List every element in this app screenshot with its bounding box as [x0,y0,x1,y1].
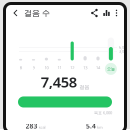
staticText: 6,000 [119,44,128,50]
staticText: 5.4 [86,122,96,130]
staticText: 283 [25,122,37,130]
staticText: 오늘 [107,66,115,71]
staticText: 11 [57,65,61,70]
staticText: 10 [44,65,48,70]
button[interactable]: 오늘 [105,63,117,75]
staticText: kcal [38,125,45,130]
staticText: km [97,125,103,130]
button[interactable]: Share [90,6,101,20]
staticText: 걸음 [79,84,89,90]
staticText: 7,458 [41,72,77,91]
staticText: 목표 6,000 [94,110,112,115]
button[interactable]: Back [11,6,23,20]
staticText: 14 [96,65,100,70]
staticText: 9 [33,65,35,70]
staticText: 12 [70,65,74,70]
staticText: 13 [83,65,87,70]
staticText: 8 [20,65,22,70]
button[interactable]: Trends [101,6,112,20]
button[interactable]: More options [112,6,121,20]
staticText: 3,000 [119,48,128,54]
staticText: 걸음 수 [24,8,50,18]
